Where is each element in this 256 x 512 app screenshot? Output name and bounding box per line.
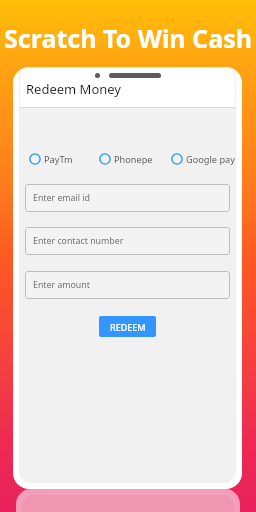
staticText: Phonepe — [114, 153, 153, 166]
staticText: PayTm — [44, 153, 73, 166]
staticText: Redeem Money — [26, 80, 122, 98]
button[interactable]: Enter contact number — [25, 227, 230, 255]
button[interactable]: PayTm — [28, 147, 98, 171]
button[interactable]: Enter email id — [25, 184, 230, 212]
staticText: Scratch To Win Cash — [0, 21, 256, 55]
staticText: Enter contact number — [33, 235, 124, 247]
button[interactable]: Google pay — [170, 147, 235, 171]
button[interactable]: Enter amount — [25, 271, 230, 299]
button[interactable]: Phonepe — [98, 147, 170, 171]
staticText: Enter email id — [33, 192, 91, 204]
button[interactable]: REDEEM — [99, 316, 156, 337]
staticText: Google pay — [186, 153, 235, 166]
staticText: Enter amount — [33, 279, 90, 291]
staticText: REDEEM — [110, 321, 146, 333]
